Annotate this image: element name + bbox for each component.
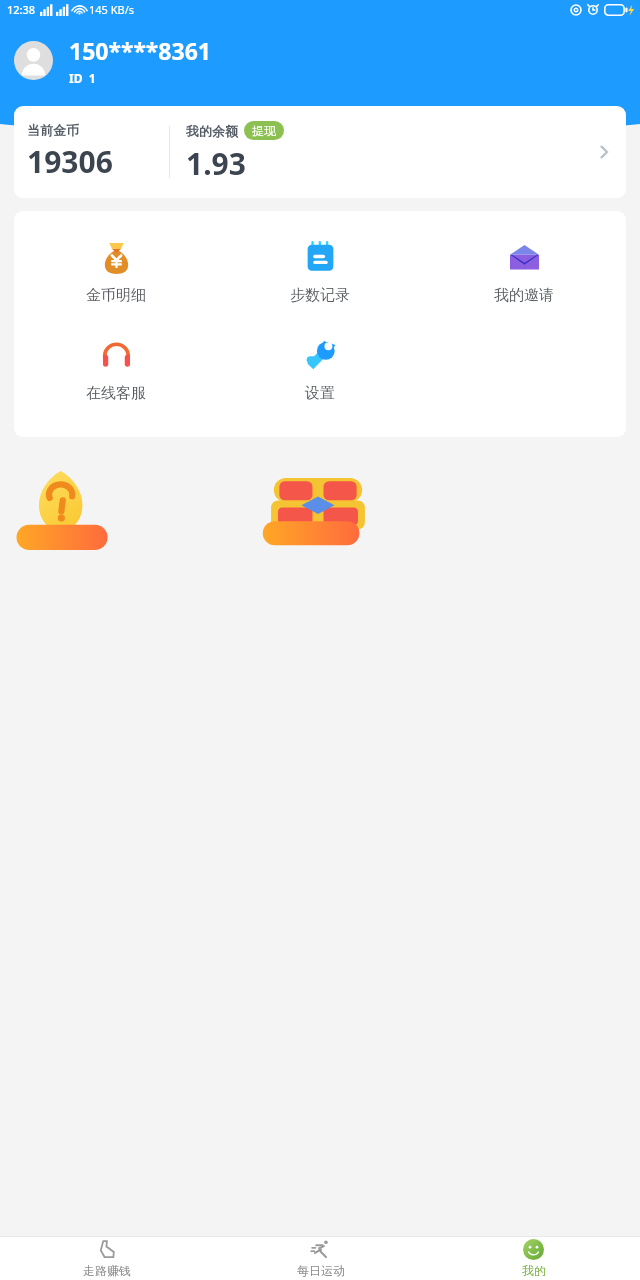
button[interactable]: 头像 [14, 41, 53, 80]
button[interactable]: 提现 [244, 121, 284, 140]
button[interactable]: 点击领取宝箱 [249, 470, 387, 550]
staticText: 1.93 [186, 143, 246, 184]
staticText: 在线客服 [86, 384, 146, 403]
button[interactable]: 在线客服 [14, 337, 218, 405]
button[interactable]: 设置 [218, 337, 422, 405]
staticText: 145 KB/s [89, 2, 135, 17]
button[interactable]: 我的邀请 [422, 239, 626, 307]
staticText: 12:38 [7, 2, 36, 17]
staticText: 步数记录 [290, 286, 350, 305]
staticText: 提现 [252, 123, 276, 138]
staticText: 当前金币 [27, 122, 79, 138]
other: 查看详情 [595, 142, 615, 162]
button[interactable]: 金币明细 [14, 239, 218, 307]
button[interactable]: 点击领取金蛋 [11, 466, 149, 550]
button[interactable]: 步数记录 [218, 239, 422, 307]
staticText: 设置 [305, 384, 335, 403]
button[interactable]: 走路赚钱 [0, 1237, 214, 1280]
staticText: 150****8361 [69, 35, 211, 66]
staticText: 我的 [522, 1263, 546, 1278]
button[interactable]: 我的 [427, 1237, 640, 1280]
staticText: 每日运动 [297, 1263, 345, 1278]
staticText: 走路赚钱 [83, 1263, 131, 1278]
staticText: 19306 [27, 141, 113, 182]
staticText: ID 1 [69, 70, 96, 86]
button[interactable]: 当前金币 [14, 106, 626, 198]
staticText: 金币明细 [86, 286, 146, 305]
button[interactable]: 每日运动 [214, 1237, 427, 1280]
staticText: 我的余额 [186, 123, 238, 139]
staticText: 我的邀请 [494, 286, 554, 305]
